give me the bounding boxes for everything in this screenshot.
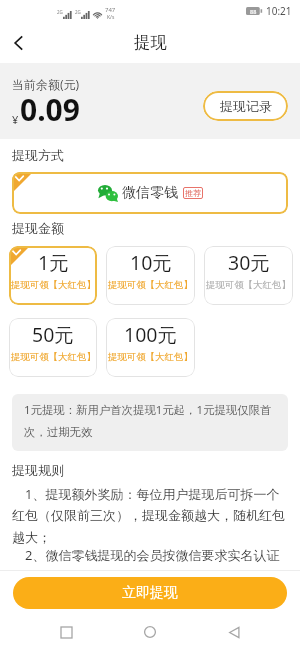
staticText: 30元 [228,249,270,276]
staticText: ¥ [12,112,19,127]
staticText: 当前余额(元) [12,76,80,92]
staticText: 50元 [32,321,74,348]
staticText: 提现可领【大红包】 [11,351,96,363]
staticText: 2G [75,9,81,15]
staticText: 提现金额 [12,220,64,236]
staticText: 100元 [124,321,177,348]
staticText: 747 [105,6,116,14]
button[interactable]: 微信零钱 [12,172,288,214]
staticText: 10:21 [266,4,292,18]
staticText: 立即提现 [122,584,178,602]
button[interactable]: 50元 [9,318,97,377]
staticText: 提现可领【大红包】 [206,279,291,291]
staticText: K/s [107,14,115,21]
staticText: 提现规则 [12,462,64,478]
button[interactable]: 100元 [106,318,195,377]
staticText: 推荐 [185,188,201,198]
staticText: 微信零钱 [122,184,178,202]
button[interactable]: Recents [48,614,84,650]
staticText: 提现记录 [220,98,272,114]
staticText: 1元提现：新用户首次提现1元起，1元提现仅限首次，过期无效 [24,402,279,440]
button[interactable]: 10元 [106,246,195,305]
button[interactable]: 30元 [204,246,293,305]
staticText: 提现可领【大红包】 [108,351,193,363]
button[interactable]: Back [0,24,38,62]
button[interactable]: 立即提现 [13,577,287,609]
staticText: 提现 [134,32,167,53]
staticText: 1、提现额外奖励：每位用户提现后可拆一个红包（仅限前三次），提现金额越大，随机红… [12,485,288,546]
staticText: 2、微信零钱提现的会员按微信要求实名认证 [12,546,280,564]
button[interactable]: 提现记录 [203,91,288,121]
staticText: 2G [57,9,63,15]
button[interactable]: Back [216,614,252,650]
staticText: 提现可领【大红包】 [108,279,193,291]
button[interactable]: 1元 [9,246,97,305]
staticText: 1元 [38,249,69,276]
staticText: 提现方式 [12,147,64,163]
button[interactable]: Home [132,614,168,650]
staticText: 0.09 [20,89,80,130]
staticText: 88 [250,8,257,15]
staticText: 提现可领【大红包】 [11,279,96,291]
staticText: 10元 [130,249,172,276]
